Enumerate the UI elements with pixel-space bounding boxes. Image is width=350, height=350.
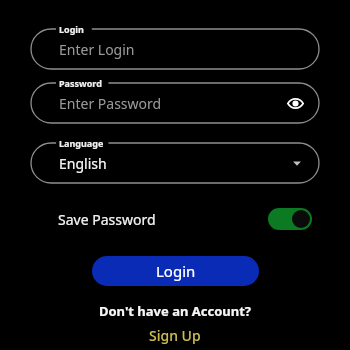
button[interactable]: Enter Login: [31, 23, 319, 69]
staticText: Sign Up: [149, 326, 201, 345]
button[interactable]: Show password: [282, 90, 308, 116]
staticText: English: [59, 154, 107, 173]
button[interactable]: Select language: [286, 152, 308, 174]
staticText: Password: [59, 77, 102, 89]
staticText: Enter Password: [59, 94, 162, 113]
button[interactable]: Sign Up: [139, 324, 211, 347]
button[interactable]: Enter Password: [31, 77, 319, 123]
staticText: Save Password: [58, 210, 156, 229]
staticText: Login: [156, 261, 196, 281]
button[interactable]: Login: [92, 256, 259, 286]
staticText: Enter Login: [59, 40, 135, 59]
button[interactable]: Save Password: [31, 204, 319, 234]
staticText: Login: [59, 23, 84, 35]
staticText: Language: [59, 137, 104, 149]
staticText: Don't have an Account?: [31, 302, 319, 320]
button[interactable]: English: [31, 137, 319, 183]
